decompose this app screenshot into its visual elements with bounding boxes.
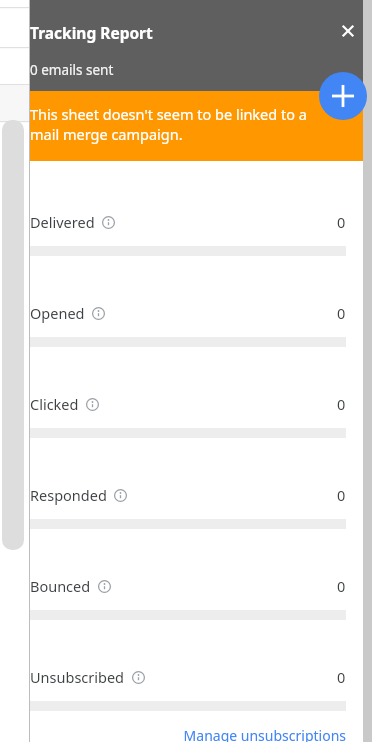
staticText: 0	[337, 212, 346, 232]
button[interactable]: Opened	[30, 303, 346, 323]
staticText: This sheet doesn't seem to be linked to …	[30, 104, 323, 145]
button[interactable]: Manage unsubscriptions	[183, 726, 346, 742]
staticText: Clicked	[30, 394, 79, 414]
button[interactable]: Add	[319, 72, 367, 120]
staticText: 0	[337, 394, 346, 414]
staticText: Responded	[30, 485, 107, 505]
button[interactable]: Responded	[30, 485, 346, 505]
button[interactable]: Clicked	[30, 394, 346, 414]
staticText: 0 emails sent	[30, 61, 114, 79]
button[interactable]: Close	[333, 16, 363, 46]
staticText: 0	[337, 485, 346, 505]
button[interactable]: Unsubscribed	[30, 667, 346, 687]
staticText: Manage unsubscriptions	[183, 726, 346, 742]
button[interactable]: Delivered	[30, 212, 346, 232]
staticText: Tracking Report	[30, 22, 153, 43]
staticText: Bounced	[30, 576, 91, 596]
staticText: 0	[337, 576, 346, 596]
staticText: Opened	[30, 303, 85, 323]
staticText: Delivered	[30, 212, 95, 232]
staticText: Unsubscribed	[30, 667, 125, 687]
staticText: 0	[337, 303, 346, 323]
staticText: 0	[337, 667, 346, 687]
button[interactable]: Bounced	[30, 576, 346, 596]
